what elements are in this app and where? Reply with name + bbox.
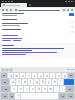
staticText: u [46,74,48,78]
button[interactable]: Modifier key [68,73,74,78]
button[interactable] [0,17,61,22]
button[interactable] [1,3,27,7]
staticText: s [18,80,20,84]
button[interactable]: Tool 1 [5,68,8,71]
button[interactable]: b [36,86,41,92]
staticText: f [30,80,31,84]
button[interactable] [0,27,61,32]
staticText: n [44,87,46,91]
staticText: d [24,80,26,84]
button[interactable]: l [58,79,63,85]
button[interactable]: Reload [9,8,13,12]
button[interactable] [2,52,57,53]
button[interactable]: Modifier key [9,93,14,99]
button[interactable]: k [52,79,57,85]
button[interactable] [2,40,11,41]
button[interactable]: a [10,79,15,85]
button[interactable]: Tool 2 [9,68,12,71]
staticText: k [54,80,56,84]
button[interactable]: Menu [70,8,74,12]
button[interactable]: Modifier key [59,93,66,99]
staticText: o [58,74,60,78]
staticText: e [22,74,24,78]
staticText: z [13,87,15,91]
staticText: y [40,74,42,78]
button[interactable]: Tool 0 [1,68,4,71]
staticText: c [26,87,28,91]
button[interactable] [2,48,64,49]
button[interactable]: Modifier key [66,86,74,92]
staticText: x [20,87,22,91]
staticText: t [34,74,35,78]
button[interactable]: Forward [5,8,9,12]
button[interactable]: g [34,79,39,85]
staticText: v [32,87,34,91]
staticText: , [56,87,57,91]
button[interactable]: d [22,79,27,85]
button[interactable]: q [8,73,13,78]
staticText: l [60,80,61,84]
button[interactable]: Search [69,13,74,16]
button[interactable]: New tab [28,3,31,6]
button[interactable]: o [56,73,61,78]
button[interactable]: Voice input [15,93,20,99]
button[interactable]: y [38,73,43,78]
button[interactable]: c [24,86,29,92]
staticText: w [15,74,18,78]
button[interactable] [2,54,26,55]
button[interactable]: Enter [64,79,74,85]
button[interactable]: n [42,86,47,92]
button[interactable]: s [16,79,21,85]
button[interactable]: Back [1,8,5,12]
button[interactable]: m [48,86,53,92]
button[interactable]: h [40,79,45,85]
button[interactable]: Modifier key [1,79,9,85]
button[interactable]: i [50,73,55,78]
button[interactable] [13,40,21,41]
button[interactable]: w [14,73,19,78]
button[interactable]: Modifier key [1,73,7,78]
button[interactable]: , [54,86,59,92]
button[interactable] [0,12,61,17]
staticText: r [28,74,30,78]
button[interactable] [0,22,61,27]
button[interactable]: p [62,73,67,78]
button[interactable]: z [11,86,17,92]
button[interactable] [14,8,61,12]
button[interactable] [2,38,22,39]
staticText: j [48,80,49,84]
staticText: b [38,87,40,91]
button[interactable] [2,50,32,51]
staticText: g [36,80,38,84]
button[interactable]: f [28,79,33,85]
button[interactable]: . [60,86,65,92]
button[interactable]: Bookmark [62,8,66,12]
button[interactable]: u [44,73,49,78]
button[interactable]: Modifier key [1,93,8,99]
button[interactable]: Profile [66,8,70,12]
staticText: i [52,74,53,78]
button[interactable] [67,69,70,70]
button[interactable] [71,69,74,70]
button[interactable]: v [30,86,35,92]
button[interactable]: x [18,86,23,92]
button[interactable]: e [20,73,25,78]
staticText: p [64,74,66,78]
button[interactable]: Modifier key [1,86,10,92]
staticText: h [42,80,44,84]
staticText: a [12,80,14,84]
staticText: q [10,74,12,78]
button[interactable]: t [32,73,37,78]
button[interactable] [2,35,18,36]
staticText: . [62,87,63,91]
button[interactable]: r [26,73,31,78]
staticText: m [49,87,52,91]
button[interactable]: Modifier key [67,93,74,99]
button[interactable]: j [46,79,51,85]
